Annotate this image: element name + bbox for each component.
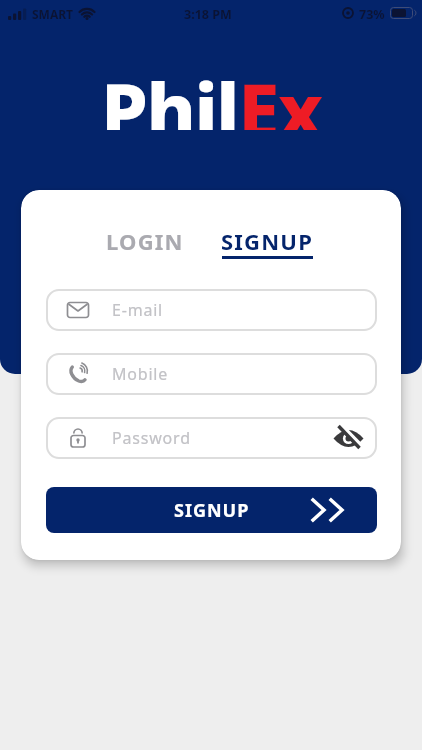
button[interactable]: SIGNUP bbox=[217, 226, 317, 254]
button[interactable]: Mobile bbox=[46, 353, 377, 395]
staticText: Password bbox=[112, 427, 191, 449]
staticText: SMART bbox=[32, 6, 74, 22]
button[interactable]: LOGIN bbox=[101, 226, 189, 254]
staticText: 3:18 PM bbox=[184, 6, 232, 23]
staticText: Mobile bbox=[112, 363, 169, 385]
button[interactable]: Password bbox=[46, 417, 377, 459]
button[interactable]: E-mail bbox=[46, 289, 377, 331]
button[interactable] bbox=[333, 425, 364, 452]
button[interactable]: SIGNUP bbox=[46, 487, 377, 533]
staticText: LOGIN bbox=[106, 226, 184, 254]
staticText: E-mail bbox=[112, 299, 164, 321]
staticText: PhilEx bbox=[101, 58, 322, 130]
staticText: 73% bbox=[359, 6, 385, 23]
staticText: SIGNUP bbox=[174, 498, 250, 523]
staticText: SIGNUP bbox=[221, 226, 313, 254]
